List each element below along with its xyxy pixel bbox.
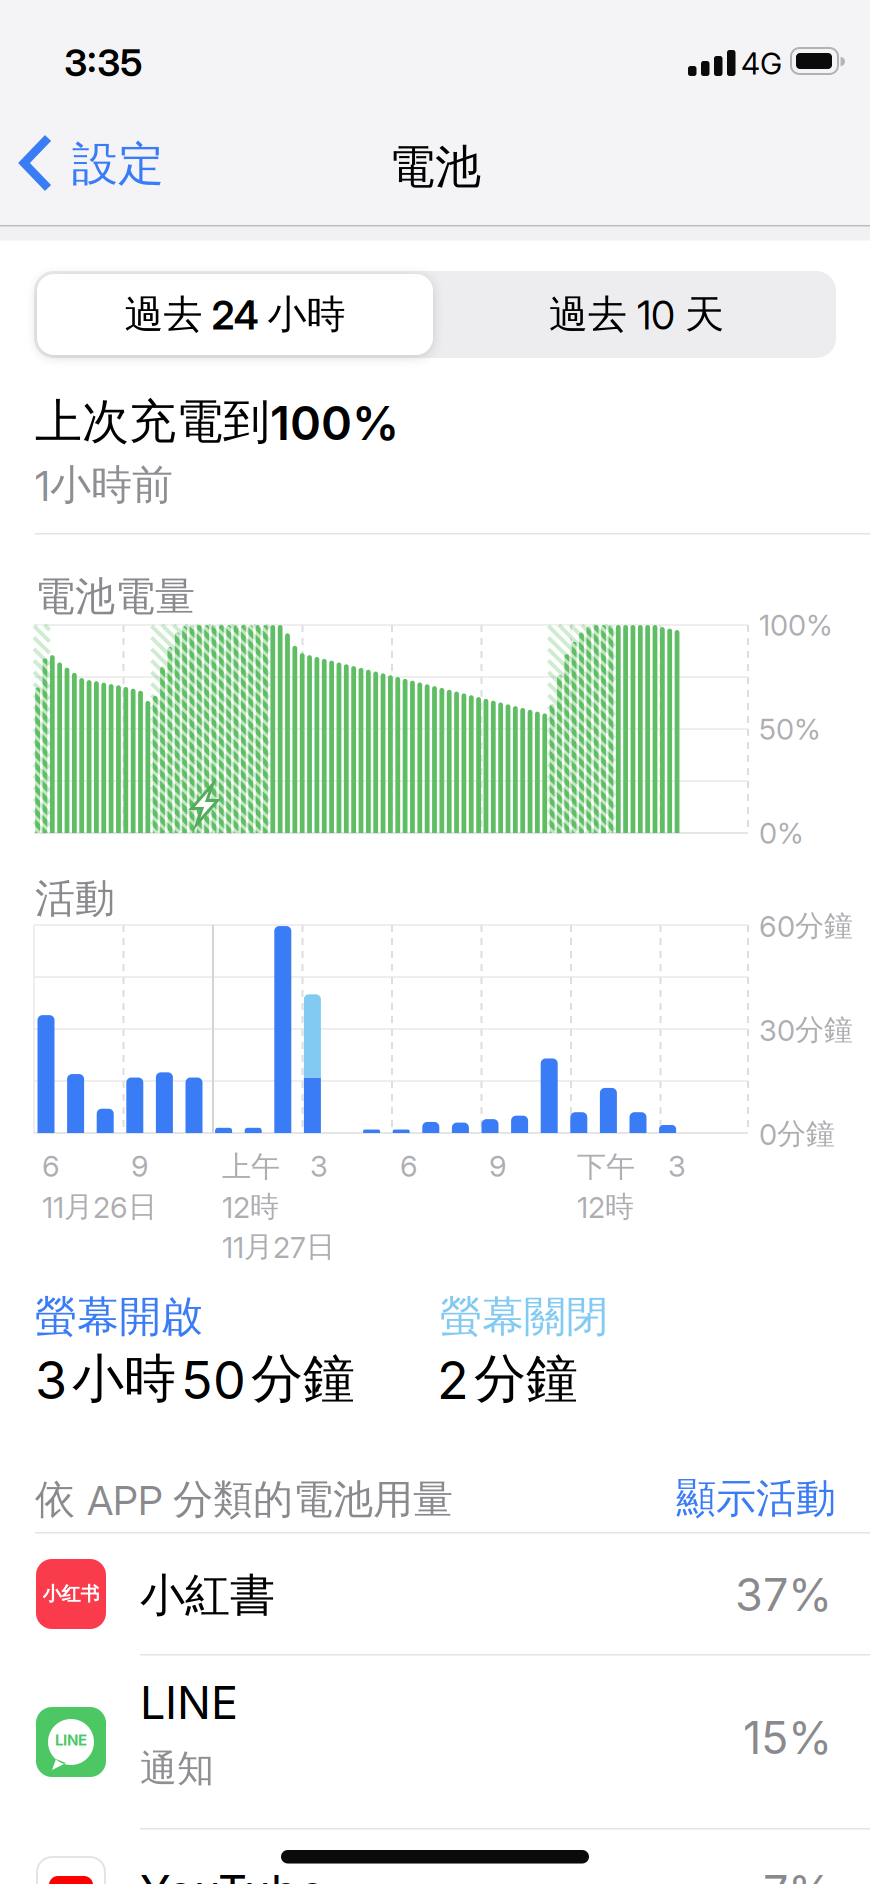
staticText: 設定 xyxy=(72,136,164,192)
staticText: 1小時前 xyxy=(35,460,173,510)
staticText: 4G xyxy=(741,46,782,81)
staticText: 0% xyxy=(759,816,804,850)
staticText: 6 xyxy=(400,1149,418,1183)
staticText: YouTube xyxy=(140,1865,325,1884)
staticText: 上次充電到100% xyxy=(35,393,399,451)
staticText: 9 xyxy=(131,1149,149,1183)
staticText: 電池 xyxy=(389,139,481,195)
staticText: 60分鐘 xyxy=(759,908,853,944)
staticText: 過去 10 天 xyxy=(549,290,724,338)
staticText: LINE xyxy=(140,1676,238,1729)
staticText: 小紅書 xyxy=(140,1568,275,1623)
staticText: 30分鐘 xyxy=(759,1012,853,1048)
button[interactable]: 設定 xyxy=(0,128,870,1884)
staticText: 15% xyxy=(743,1711,832,1764)
staticText: 過去 24 小時 xyxy=(124,290,345,338)
button[interactable]: YouTube xyxy=(0,1830,870,1884)
button[interactable]: 過去 24 小時 xyxy=(37,274,433,355)
staticText: 6 xyxy=(42,1149,60,1183)
staticText: 9 xyxy=(489,1149,507,1183)
staticText: 通知 xyxy=(140,1746,214,1791)
staticText: 小红书 xyxy=(42,1582,99,1606)
staticText: 3 xyxy=(668,1149,686,1183)
staticText: 活動 xyxy=(35,874,115,923)
button[interactable]: 小红书 xyxy=(0,1533,870,1655)
staticText: 螢幕開啟 xyxy=(35,1291,203,1343)
staticText: 50% xyxy=(759,712,821,746)
staticText: 0分鐘 xyxy=(759,1116,835,1152)
staticText: 電池電量 xyxy=(35,572,195,621)
button[interactable]: LINE xyxy=(0,1655,870,1829)
staticText: 7% xyxy=(763,1865,832,1884)
staticText: 螢幕關閉 xyxy=(440,1291,608,1343)
button[interactable]: 過去 10 天 xyxy=(437,271,836,358)
staticText: LINE xyxy=(55,1731,87,1749)
staticText: 3 xyxy=(310,1149,328,1183)
staticText: 顯示活動 xyxy=(676,1474,836,1523)
staticText: 3:35 xyxy=(64,40,143,85)
staticText: 上午 xyxy=(222,1149,280,1185)
button[interactable] xyxy=(34,271,836,358)
staticText: 11月26日 xyxy=(42,1189,157,1225)
staticText: 依 APP 分類的電池用量 xyxy=(35,1475,453,1524)
button[interactable]: 顯示活動 xyxy=(676,1474,836,1523)
staticText: 下午 xyxy=(577,1149,635,1185)
staticText: 100% xyxy=(759,608,833,642)
staticText: 12時 xyxy=(577,1189,634,1225)
staticText: 12時 xyxy=(222,1189,279,1225)
staticText: 37% xyxy=(735,1568,832,1621)
staticText: 3 小時 50 分鐘 xyxy=(35,1347,355,1411)
staticText: 11月27日 xyxy=(222,1229,335,1265)
staticText: 2 分鐘 xyxy=(437,1347,578,1411)
